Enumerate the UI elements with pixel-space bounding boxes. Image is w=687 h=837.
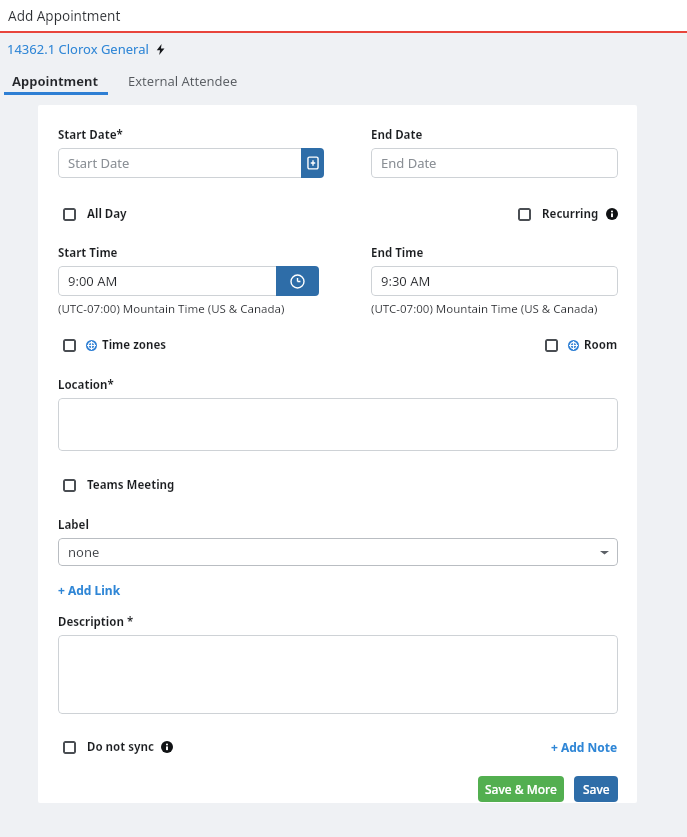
staticText: Teams Meeting bbox=[87, 477, 175, 493]
staticText: Room bbox=[584, 337, 618, 353]
staticText: Appointment bbox=[12, 72, 99, 90]
staticText: Start Date bbox=[68, 154, 130, 172]
button[interactable]: Appointment bbox=[3, 70, 108, 95]
staticText: (UTC-07:00) Mountain Time (US & Canada) bbox=[58, 301, 285, 317]
staticText: + Add Note bbox=[551, 739, 618, 755]
button[interactable]: Open date picker bbox=[301, 148, 324, 178]
staticText: End Time bbox=[371, 245, 424, 261]
staticText: 9:00 AM bbox=[68, 272, 118, 290]
button[interactable]: 9:00 AM bbox=[58, 266, 284, 296]
staticText: none bbox=[68, 543, 100, 561]
button[interactable]: Save & More bbox=[478, 776, 564, 802]
staticText: End Date bbox=[371, 127, 423, 143]
button[interactable]: Save bbox=[574, 776, 618, 802]
button[interactable]: + Add Note bbox=[551, 737, 618, 757]
button[interactable]: Recurring bbox=[518, 206, 618, 222]
button[interactable]: Room bbox=[545, 337, 618, 353]
button[interactable]: 9:30 AM bbox=[371, 266, 618, 296]
staticText: + Add Link bbox=[58, 582, 121, 598]
staticText: Start Time bbox=[58, 245, 118, 261]
button[interactable]: End Date bbox=[371, 148, 618, 178]
staticText: Start Date* bbox=[58, 127, 123, 143]
button[interactable]: Start Date bbox=[58, 148, 310, 178]
staticText: Time zones bbox=[102, 337, 167, 353]
button[interactable]: Time zones bbox=[63, 337, 167, 353]
button[interactable]: All Day bbox=[63, 206, 127, 222]
button[interactable]: 14362.1 Clorox General bbox=[7, 40, 166, 58]
button[interactable] bbox=[58, 635, 618, 714]
staticText: Add Appointment bbox=[8, 7, 121, 25]
staticText: Label bbox=[58, 517, 89, 533]
button[interactable]: none bbox=[58, 538, 618, 566]
staticText: External Attendee bbox=[128, 72, 238, 90]
staticText: Description * bbox=[58, 614, 134, 630]
button[interactable] bbox=[58, 398, 618, 451]
staticText: End Date bbox=[381, 154, 437, 172]
staticText: 14362.1 Clorox General bbox=[7, 40, 149, 58]
staticText: (UTC-07:00) Mountain Time (US & Canada) bbox=[371, 301, 598, 317]
staticText: Recurring bbox=[542, 206, 599, 222]
staticText: Save & More bbox=[485, 781, 557, 797]
button[interactable]: External Attendee bbox=[122, 72, 244, 90]
button[interactable]: Teams Meeting bbox=[63, 477, 175, 493]
staticText: Save bbox=[583, 781, 610, 797]
button[interactable]: + Add Link bbox=[58, 580, 121, 600]
staticText: All Day bbox=[87, 206, 127, 222]
staticText: Location* bbox=[58, 377, 114, 393]
staticText: 9:30 AM bbox=[381, 272, 431, 290]
button[interactable]: Open time picker bbox=[276, 266, 319, 296]
staticText: Do not sync bbox=[87, 739, 154, 755]
button[interactable]: Do not sync bbox=[63, 739, 173, 755]
